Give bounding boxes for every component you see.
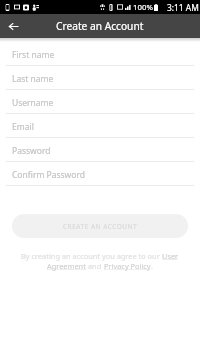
button[interactable]: First name <box>0 42 200 65</box>
button[interactable]: Username <box>0 90 200 113</box>
staticText: 3:11 AM <box>167 2 199 13</box>
button[interactable]: Agreement <box>47 261 86 271</box>
staticText: User <box>162 251 179 261</box>
staticText: 100% <box>133 2 153 13</box>
staticText: Confirm Password <box>12 169 85 181</box>
staticText: By creating an account you agree to our <box>21 251 162 261</box>
button[interactable]: Confirm Password <box>0 162 200 185</box>
button[interactable]: Password <box>0 138 200 161</box>
staticText: and <box>86 261 104 271</box>
staticText: Create an Account <box>56 19 144 33</box>
staticText: Agreement <box>47 261 86 271</box>
staticText: CREATE AN ACCOUNT <box>63 222 138 231</box>
staticText: Privacy Policy <box>104 261 151 271</box>
staticText: First name <box>12 49 55 61</box>
button[interactable]: Back <box>3 16 23 36</box>
staticText: Email <box>12 121 34 133</box>
staticText: Username <box>12 97 54 109</box>
staticText: Password <box>12 145 51 157</box>
button[interactable]: Email <box>0 114 200 137</box>
button[interactable]: User <box>162 251 179 261</box>
staticText: Last name <box>12 73 54 85</box>
button[interactable]: Last name <box>0 66 200 89</box>
button[interactable]: Privacy Policy <box>104 261 151 271</box>
button[interactable]: CREATE AN ACCOUNT <box>12 214 188 238</box>
staticText: . <box>151 261 153 271</box>
